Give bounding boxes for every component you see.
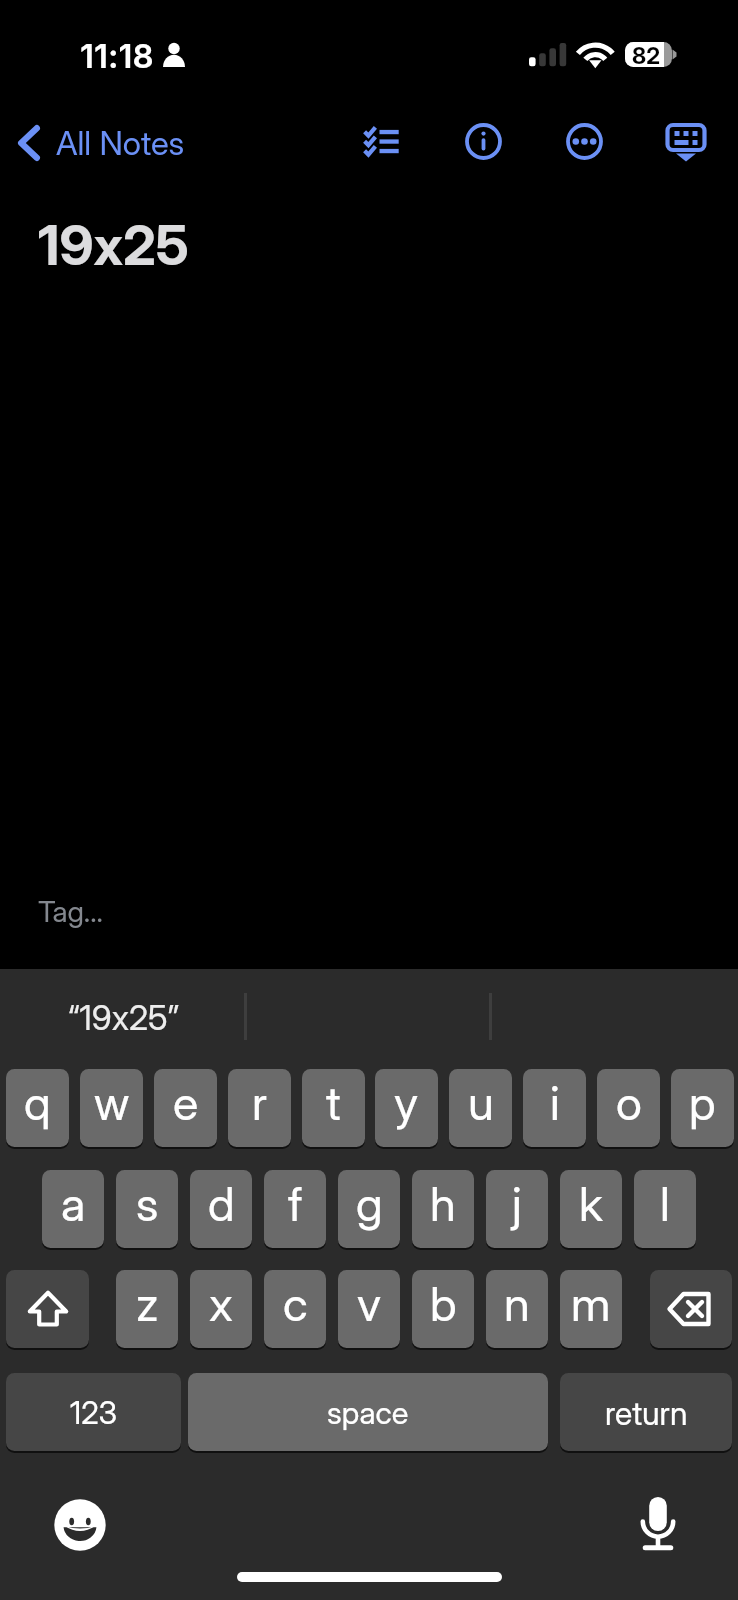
staticText: space [327,1394,409,1432]
staticText: z [136,1275,159,1332]
button[interactable]: g [338,1170,400,1248]
staticText: c [283,1275,308,1332]
button[interactable]: s [116,1170,178,1248]
staticText: 11:18 [80,36,154,76]
button[interactable]: w [80,1069,143,1147]
button[interactable]: Hide keyboard [656,110,716,176]
button[interactable]: d [190,1170,252,1248]
staticText: g [356,1175,383,1232]
staticText: Tag... [38,894,103,929]
staticText: All Notes [56,123,185,163]
button[interactable]: 123 [6,1373,181,1451]
button[interactable]: x [190,1270,252,1348]
button[interactable]: a [42,1170,104,1248]
staticText: u [468,1074,494,1131]
button[interactable]: h [412,1170,474,1248]
staticText: j [512,1175,522,1232]
staticText: 19x25 [38,212,189,279]
button[interactable]: i [523,1069,586,1147]
button[interactable]: u [449,1069,512,1147]
staticText: k [579,1175,603,1232]
button[interactable]: n [486,1270,548,1348]
button[interactable]: c [264,1270,326,1348]
staticText: l [660,1175,670,1232]
button[interactable]: o [597,1069,660,1147]
button[interactable]: All Notes [12,112,191,174]
button[interactable]: q [6,1069,69,1147]
button[interactable]: e [154,1069,217,1147]
staticText: e [173,1074,199,1131]
staticText: 123 [70,1394,118,1432]
button[interactable]: m [560,1270,622,1348]
button[interactable]: j [486,1170,548,1248]
staticText: s [136,1175,159,1232]
staticText: o [616,1074,642,1131]
button[interactable]: Backspace [650,1270,732,1348]
staticText: w [94,1074,130,1131]
button[interactable]: t [302,1069,365,1147]
staticText: y [394,1074,419,1131]
button[interactable]: More options [554,110,614,172]
staticText: f [288,1175,303,1232]
button[interactable]: Emoji keyboard [44,1489,116,1561]
staticText: 82 [632,42,660,67]
staticText: q [24,1074,51,1131]
button[interactable]: space [188,1373,548,1451]
staticText: x [209,1275,233,1332]
staticText: “19x25” [68,997,180,1038]
button[interactable]: Shift [6,1270,89,1348]
button[interactable]: r [228,1069,291,1147]
button[interactable]: Info [453,110,513,172]
button[interactable]: z [116,1270,178,1348]
staticText: i [550,1074,560,1131]
staticText: m [571,1275,611,1332]
staticText: return [605,1394,688,1433]
button[interactable]: Dictate [622,1487,694,1559]
staticText: p [689,1074,716,1131]
button[interactable]: return [560,1373,732,1451]
staticText: h [430,1175,456,1232]
button[interactable]: y [375,1069,438,1147]
button[interactable]: b [412,1270,474,1348]
staticText: b [430,1275,457,1332]
staticText: n [504,1275,530,1332]
staticText: r [252,1074,268,1131]
button[interactable]: Checklist [348,110,414,172]
staticText: t [326,1074,341,1131]
button[interactable]: f [264,1170,326,1248]
button[interactable]: v [338,1270,400,1348]
button[interactable]: p [671,1069,734,1147]
button[interactable]: k [560,1170,622,1248]
staticText: d [208,1175,235,1232]
staticText: a [61,1175,86,1232]
button[interactable]: l [634,1170,696,1248]
staticText: v [357,1275,382,1332]
